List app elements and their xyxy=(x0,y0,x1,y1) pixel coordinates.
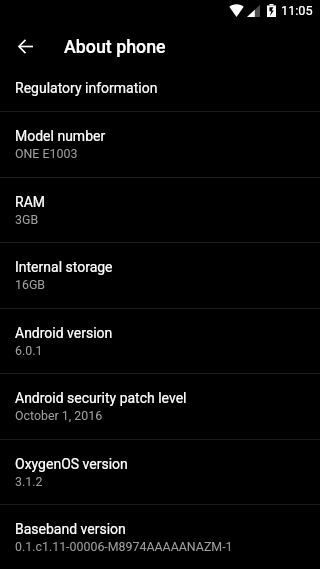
staticText: 3.1.2 xyxy=(15,474,43,489)
staticText: About phone xyxy=(64,36,166,57)
staticText: Internal storage xyxy=(15,259,113,275)
button[interactable]: RAM xyxy=(0,178,320,242)
staticText: Android version xyxy=(15,325,113,341)
staticText: 6.0.1 xyxy=(15,343,43,358)
button[interactable]: Internal storage xyxy=(0,243,320,308)
staticText: 11:05 xyxy=(281,3,313,18)
staticText: ONE E1003 xyxy=(15,146,78,161)
button[interactable]: Android version xyxy=(0,309,320,373)
staticText: RAM xyxy=(15,194,45,210)
button[interactable]: Baseband version xyxy=(0,505,320,569)
staticText: Regulatory information xyxy=(15,80,158,96)
staticText: 3GB xyxy=(15,212,39,227)
staticText: October 1, 2016 xyxy=(15,408,103,423)
staticText: Android security patch level xyxy=(15,390,187,406)
button[interactable]: Android security patch level xyxy=(0,374,320,439)
staticText: 16GB xyxy=(15,277,46,292)
button[interactable]: Back xyxy=(5,27,45,66)
button[interactable]: Model number xyxy=(0,112,320,177)
staticText: Model number xyxy=(15,128,106,144)
button[interactable]: Regulatory information xyxy=(0,65,320,111)
staticText: 0.1.c1.11-00006-M8974AAAAANAZM-1 xyxy=(15,539,233,554)
button[interactable]: OxygenOS version xyxy=(0,440,320,504)
staticText: OxygenOS version xyxy=(15,456,128,472)
staticText: Baseband version xyxy=(15,521,126,537)
